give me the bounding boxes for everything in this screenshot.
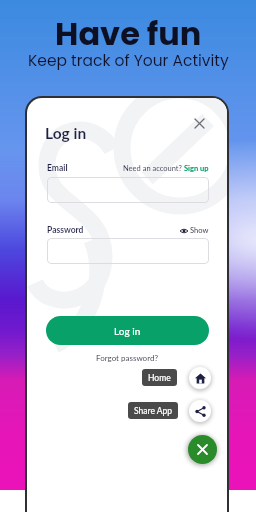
button[interactable]: Close menu (188, 435, 217, 464)
staticText: Email (47, 163, 68, 173)
staticText: Share App (134, 406, 173, 416)
button[interactable]: Home (189, 367, 211, 389)
staticText: Log in (45, 124, 87, 143)
button[interactable]: Log in (46, 316, 209, 345)
staticText: Log in (114, 325, 141, 337)
button[interactable]: Close (190, 114, 208, 132)
button[interactable]: Home (142, 369, 177, 386)
staticText: Password (47, 225, 84, 235)
button[interactable]: Share App (189, 400, 211, 422)
staticText: Show (190, 226, 209, 235)
button[interactable]: Sign up (184, 164, 209, 173)
button[interactable]: Forgot password? (96, 353, 158, 363)
button[interactable]: Show (180, 226, 209, 235)
staticText: Have fun (55, 11, 202, 56)
staticText: Need an account? (123, 164, 184, 173)
button[interactable]: Share App (128, 402, 178, 419)
button[interactable] (47, 177, 209, 203)
staticText: Home (148, 373, 171, 383)
staticText: Keep track of Your Activity (28, 50, 229, 72)
button[interactable] (47, 238, 209, 264)
